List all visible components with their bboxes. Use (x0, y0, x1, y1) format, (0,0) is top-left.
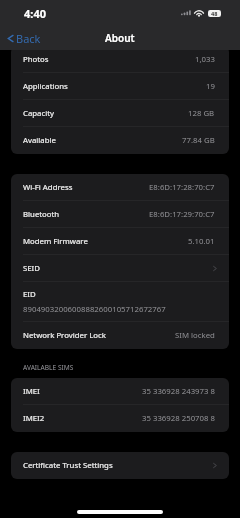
button[interactable]: Modem Firmware (11, 228, 229, 255)
staticText: 89049032006008882600105712672767 (23, 304, 166, 315)
button[interactable]: Applications (11, 73, 229, 100)
staticText: Certificate Trust Settings (23, 460, 113, 471)
staticText: 77.84 GB (182, 135, 215, 146)
staticText: E8:6D:17:29:70:C7 (149, 209, 215, 220)
staticText: Available (23, 135, 56, 146)
staticText: E8:6D:17:28:70:C7 (149, 182, 215, 193)
staticText: 19 (206, 81, 215, 92)
staticText: Applications (23, 81, 68, 92)
staticText: Wi-Fi Address (23, 182, 73, 193)
staticText: SIM locked (175, 330, 215, 341)
staticText: AVAILABLE SIMS (23, 363, 74, 372)
button[interactable]: IMEI (11, 378, 229, 405)
staticText: About (105, 31, 135, 45)
staticText: 128 GB (188, 108, 215, 119)
button[interactable]: Available (11, 127, 229, 154)
staticText: Bluetooth (23, 209, 60, 220)
staticText: IMEI2 (23, 413, 45, 424)
staticText: Modem Firmware (23, 236, 88, 247)
button[interactable]: Certificate Trust Settings (11, 452, 229, 479)
button[interactable]: Network Provider Lock (11, 322, 229, 349)
button[interactable]: Capacity (11, 100, 229, 127)
staticText: Capacity (23, 108, 55, 119)
staticText: 5.10.01 (188, 236, 215, 247)
button[interactable]: Wi-Fi Address (11, 174, 229, 201)
staticText: Network Provider Lock (23, 330, 106, 341)
staticText: 4:40 (24, 6, 46, 21)
staticText: 48 (211, 10, 218, 17)
staticText: 35 336928 250708 8 (142, 413, 215, 424)
staticText: 1,033 (195, 54, 215, 65)
staticText: Back (16, 31, 41, 46)
button[interactable]: Bluetooth (11, 201, 229, 228)
button[interactable]: Back (7, 31, 41, 46)
button[interactable]: EID (11, 282, 229, 322)
button[interactable]: SEID (11, 255, 229, 282)
staticText: 35 336928 243973 8 (142, 386, 215, 397)
staticText: SEID (23, 263, 40, 274)
staticText: IMEI (23, 386, 40, 397)
button[interactable]: Photos (11, 46, 229, 73)
button[interactable]: IMEI2 (11, 405, 229, 432)
staticText: Photos (23, 54, 49, 65)
staticText: EID (23, 289, 36, 300)
